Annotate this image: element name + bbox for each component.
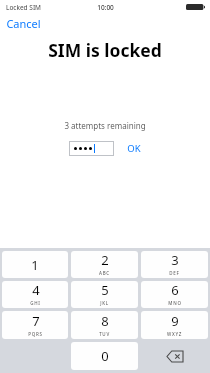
button[interactable]: 7 [2,311,68,339]
staticText: 1 [31,256,39,274]
staticText: 7 [32,312,40,330]
staticText: 0 [101,347,109,365]
staticText: OK [127,142,141,155]
staticText: 4 [32,281,40,299]
staticText: Locked SIM [6,3,41,12]
staticText: TUV [99,331,110,337]
staticText: 9 [171,312,179,330]
staticText: 3 [171,251,179,269]
staticText: ABC [99,270,110,276]
staticText: PQRS [28,331,43,337]
staticText: WXYZ [167,331,182,337]
button[interactable]: Cancel [6,16,41,31]
button[interactable]: 3 [141,251,208,278]
staticText: 10:00 [97,3,114,12]
staticText: 2 [101,251,109,269]
button[interactable]: 9 [141,311,208,339]
button[interactable]: 6 [141,281,208,308]
button[interactable] [69,141,114,156]
staticText: 8 [101,312,109,330]
button[interactable]: 5 [71,281,138,308]
staticText: JKL [100,300,109,306]
staticText: Cancel [6,16,41,31]
staticText: SIM is locked [48,38,162,62]
button[interactable]: 1 [2,251,68,278]
staticText: MNO [168,300,182,306]
staticText: 6 [171,281,179,299]
button[interactable]: OK [127,142,141,155]
button[interactable]: 0 [71,342,138,370]
button[interactable]: 2 [71,251,138,278]
button[interactable]: 8 [71,311,138,339]
staticText: 3 attempts remaining [64,120,146,131]
button[interactable]: Backspace [141,342,208,370]
staticText: 5 [101,281,109,299]
button[interactable]: 4 [2,281,68,308]
staticText: DEF [169,270,180,276]
staticText: GHI [30,300,41,306]
